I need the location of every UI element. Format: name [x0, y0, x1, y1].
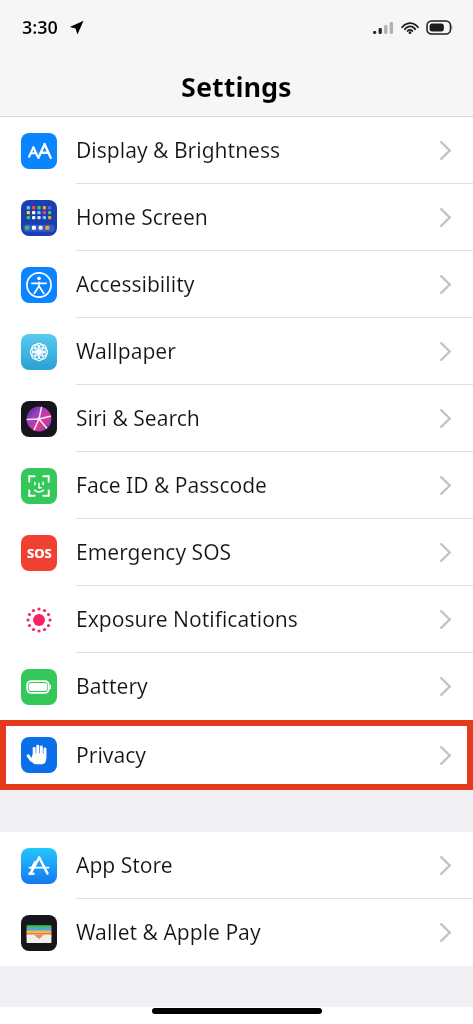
- staticText: App Store: [76, 851, 173, 880]
- staticText: Emergency SOS: [76, 538, 232, 567]
- button[interactable]: App Store: [0, 832, 473, 899]
- button[interactable]: Siri & Search: [0, 385, 473, 452]
- button[interactable]: Exposure Notifications: [0, 586, 473, 653]
- staticText: SOS: [27, 544, 52, 562]
- button[interactable]: Wallpaper: [0, 318, 473, 385]
- button[interactable]: Privacy: [0, 720, 473, 790]
- staticText: Siri & Search: [76, 404, 200, 433]
- staticText: Wallpaper: [76, 337, 176, 366]
- staticText: Face ID & Passcode: [76, 471, 267, 500]
- staticText: Settings: [181, 68, 292, 105]
- button[interactable]: Wallet & Apple Pay: [0, 899, 473, 966]
- staticText: Wallet & Apple Pay: [76, 918, 261, 947]
- staticText: Display & Brightness: [76, 136, 281, 165]
- button[interactable]: Home Screen: [0, 184, 473, 251]
- button[interactable]: Display & Brightness: [0, 117, 473, 184]
- button[interactable]: Battery: [0, 653, 473, 720]
- staticText: Home Screen: [76, 203, 208, 232]
- staticText: Battery: [76, 672, 148, 701]
- button[interactable]: SOS: [0, 519, 473, 586]
- staticText: Exposure Notifications: [76, 605, 298, 634]
- staticText: 3:30: [22, 15, 58, 40]
- button[interactable]: Accessibility: [0, 251, 473, 318]
- button[interactable]: Face ID & Passcode: [0, 452, 473, 519]
- staticText: Accessibility: [76, 270, 195, 299]
- staticText: Privacy: [76, 741, 147, 770]
